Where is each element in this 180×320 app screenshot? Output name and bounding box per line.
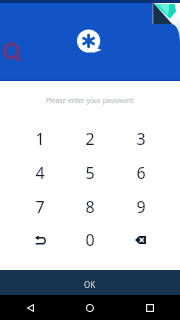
button[interactable]: Back bbox=[0, 295, 60, 320]
staticText: 7 bbox=[35, 196, 45, 218]
button[interactable]: 8 bbox=[64, 190, 115, 224]
staticText: 8 bbox=[85, 196, 95, 218]
button[interactable]: 9 bbox=[115, 190, 166, 224]
button[interactable]: 5 bbox=[64, 156, 115, 190]
staticText: 4 bbox=[35, 162, 45, 184]
button[interactable]: 3 bbox=[115, 122, 166, 156]
staticText: 2 bbox=[85, 128, 95, 150]
button[interactable]: Backspace bbox=[115, 223, 166, 257]
staticText: 5 bbox=[85, 162, 95, 184]
staticText: 3 bbox=[136, 128, 146, 150]
staticText: 0 bbox=[85, 229, 95, 251]
button[interactable]: 2 bbox=[64, 122, 115, 156]
button[interactable]: 7 bbox=[14, 190, 65, 224]
staticText: Please enter your password bbox=[46, 96, 134, 105]
staticText: 9 bbox=[136, 196, 146, 218]
button[interactable]: OK bbox=[0, 270, 180, 295]
staticText: 6 bbox=[136, 162, 146, 184]
button[interactable]: 0 bbox=[64, 223, 115, 257]
button[interactable]: Undo bbox=[14, 223, 65, 257]
button[interactable]: 6 bbox=[115, 156, 166, 190]
button[interactable]: 4 bbox=[14, 156, 65, 190]
staticText: OK bbox=[84, 279, 96, 290]
button[interactable]: Recents bbox=[120, 295, 180, 320]
button[interactable]: 1 bbox=[14, 122, 65, 156]
button[interactable]: Home bbox=[60, 295, 120, 320]
staticText: 1 bbox=[35, 128, 45, 150]
